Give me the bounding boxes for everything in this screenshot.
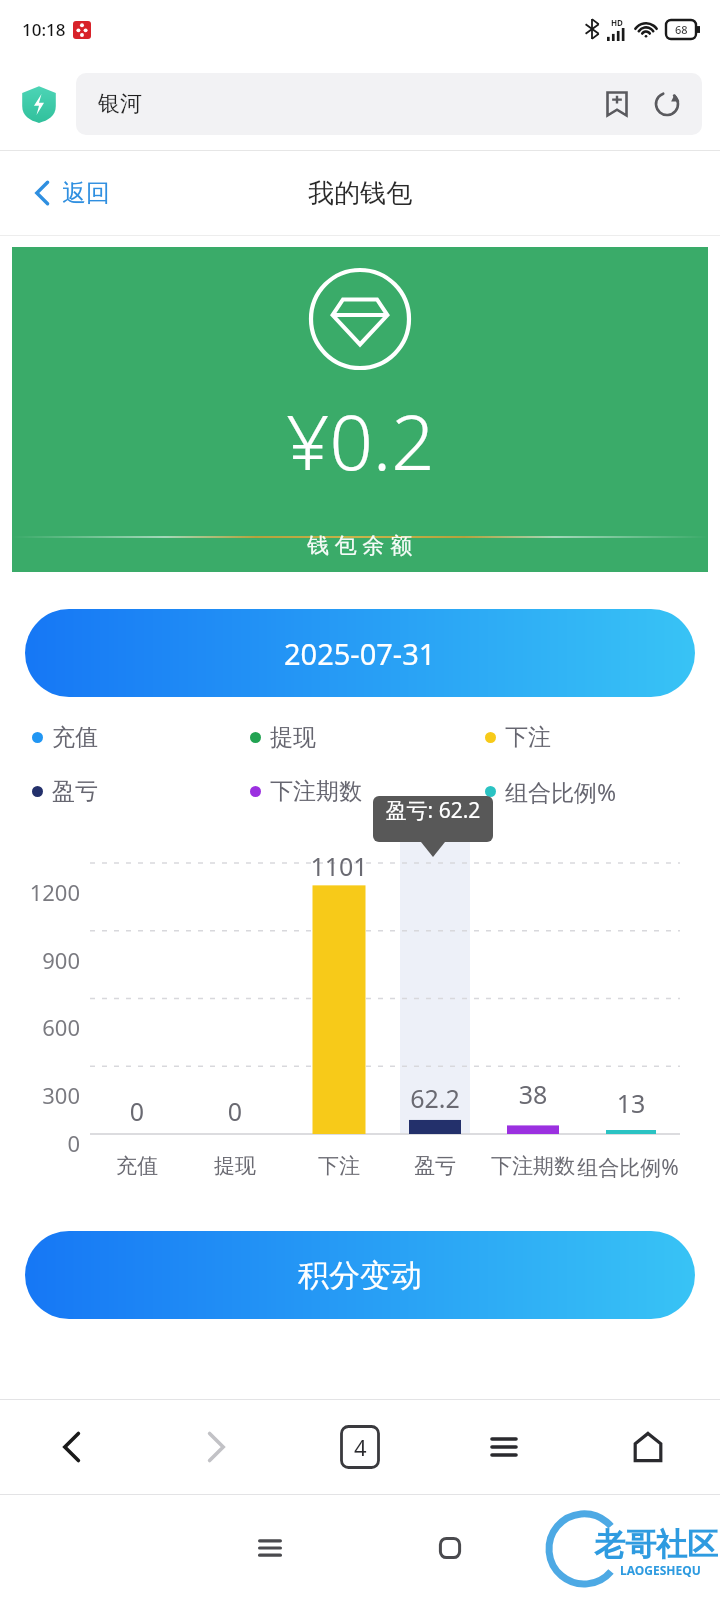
button[interactable]: 银河 [76,73,702,135]
button[interactable]: 充值 [26,720,98,754]
staticText: 0 [77,1094,197,1128]
staticText: 钱 包 余 额 [307,529,413,559]
staticText: 盈亏 [52,777,98,806]
staticText: 1101 [279,849,399,883]
other: Tabs: 4 [340,1425,380,1469]
button[interactable]: Back [0,1400,144,1494]
staticText: 62.2 [375,1081,495,1115]
button[interactable]: 下注 [479,720,551,754]
staticText: 提现 [270,723,316,752]
staticText: LAOGESHEQU [620,1562,701,1578]
staticText: 组合比例% [558,1153,698,1182]
staticText: 下注期数 [270,777,362,806]
staticText: 我的钱包 [308,177,412,210]
staticText: 银河 [98,90,142,118]
staticText: 下注 [269,1153,409,1179]
staticText: 10:18 [22,18,66,41]
button[interactable]: Tabs: 4 [288,1400,432,1494]
staticText: 0 [175,1094,295,1128]
staticText: 盈亏: 62.2 [373,796,493,825]
button[interactable]: 组合比例% [479,774,617,808]
button[interactable]: Bookmark [598,85,636,123]
staticText: 返回 [62,178,110,208]
staticText: 4 [354,1432,367,1462]
button[interactable]: 下注期数 [244,774,362,808]
staticText: 2025-07-31 [284,634,436,673]
staticText: 0 [0,1128,80,1158]
staticText: 38 [473,1077,593,1111]
button[interactable]: 积分变动 [25,1231,695,1319]
button[interactable]: Home button [360,1495,540,1600]
staticText: 充值 [52,723,98,752]
staticText: 300 [0,1080,80,1110]
staticText: 盈亏 [365,1153,505,1179]
button[interactable]: 盈亏 [26,774,98,808]
staticText: 下注 [505,723,551,752]
staticText: 下注期数 [463,1153,603,1179]
button[interactable]: Menu [432,1400,576,1494]
staticText: 积分变动 [298,1256,422,1295]
staticText: 600 [0,1012,80,1042]
staticText: 13 [571,1086,691,1120]
staticText: 900 [0,945,80,975]
staticText: 充值 [67,1153,207,1179]
button[interactable]: Refresh [648,85,686,123]
staticText: 提现 [165,1153,305,1179]
button[interactable]: Recents [180,1495,360,1600]
button[interactable]: 提现 [244,720,316,754]
staticText: HD [611,17,623,28]
button[interactable]: 2025-07-31 [25,609,695,697]
button[interactable]: Forward [144,1400,288,1494]
staticText: ¥0.2 [286,389,435,493]
staticText: 1200 [0,877,80,907]
button[interactable]: 返回 [26,172,116,214]
staticText: 组合比例% [505,776,617,807]
button[interactable]: ¥0.2 [12,247,708,572]
button[interactable]: Shield [18,83,60,125]
staticText: 68 [675,22,688,37]
button[interactable]: Home [576,1400,720,1494]
staticText: 老哥社区 [594,1525,718,1564]
